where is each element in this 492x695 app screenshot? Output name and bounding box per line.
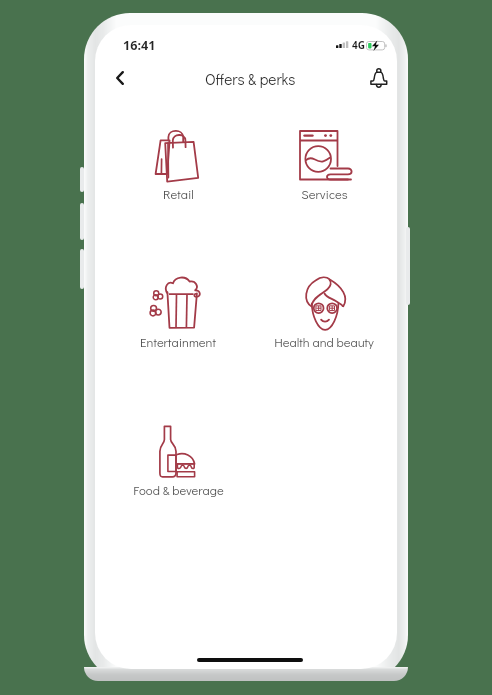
staticText: Offers & perks [205, 69, 296, 89]
button[interactable]: Notifications [362, 61, 396, 95]
staticText: Health and beauty [274, 334, 374, 351]
button[interactable]: Services [252, 127, 396, 213]
staticText: Entertainment [140, 334, 216, 351]
button[interactable]: Back [102, 60, 138, 96]
button[interactable]: Health and beauty [252, 275, 396, 361]
button[interactable]: Food & beverage [106, 423, 250, 509]
staticText: 16:41 [123, 37, 156, 54]
button[interactable]: Entertainment [106, 275, 250, 361]
staticText: 4G [352, 38, 365, 52]
staticText: Services [301, 186, 348, 203]
button[interactable]: Retail [106, 127, 250, 213]
staticText: Retail [163, 186, 194, 203]
staticText: Food & beverage [133, 482, 224, 499]
